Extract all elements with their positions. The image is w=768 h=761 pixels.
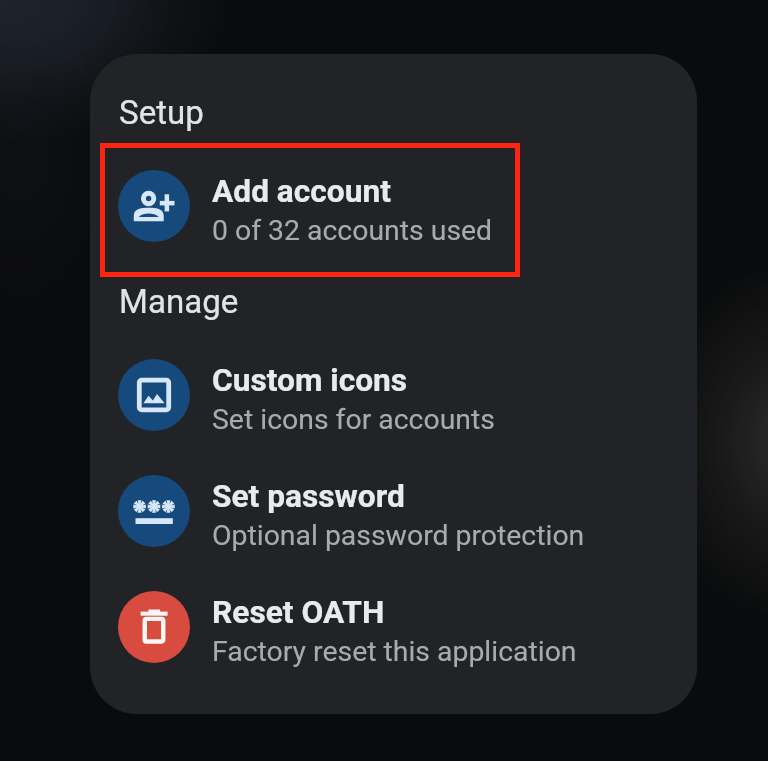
staticText: Set password	[212, 478, 405, 515]
staticText: Reset OATH	[212, 594, 385, 631]
button[interactable]: Reset OATH	[90, 569, 697, 685]
staticText: Custom icons	[212, 362, 408, 399]
staticText: Manage	[119, 282, 239, 321]
staticText: 0 of 32 accounts used	[212, 214, 493, 247]
staticText: Set icons for accounts	[212, 403, 495, 436]
button[interactable]: Custom icons	[90, 337, 697, 453]
button[interactable]: Add account	[90, 148, 697, 264]
staticText: Add account	[212, 173, 391, 210]
staticText: Factory reset this application	[212, 635, 577, 668]
button[interactable]: Set password	[90, 453, 697, 569]
staticText: Setup	[119, 93, 204, 132]
staticText: Optional password protection	[212, 519, 585, 552]
